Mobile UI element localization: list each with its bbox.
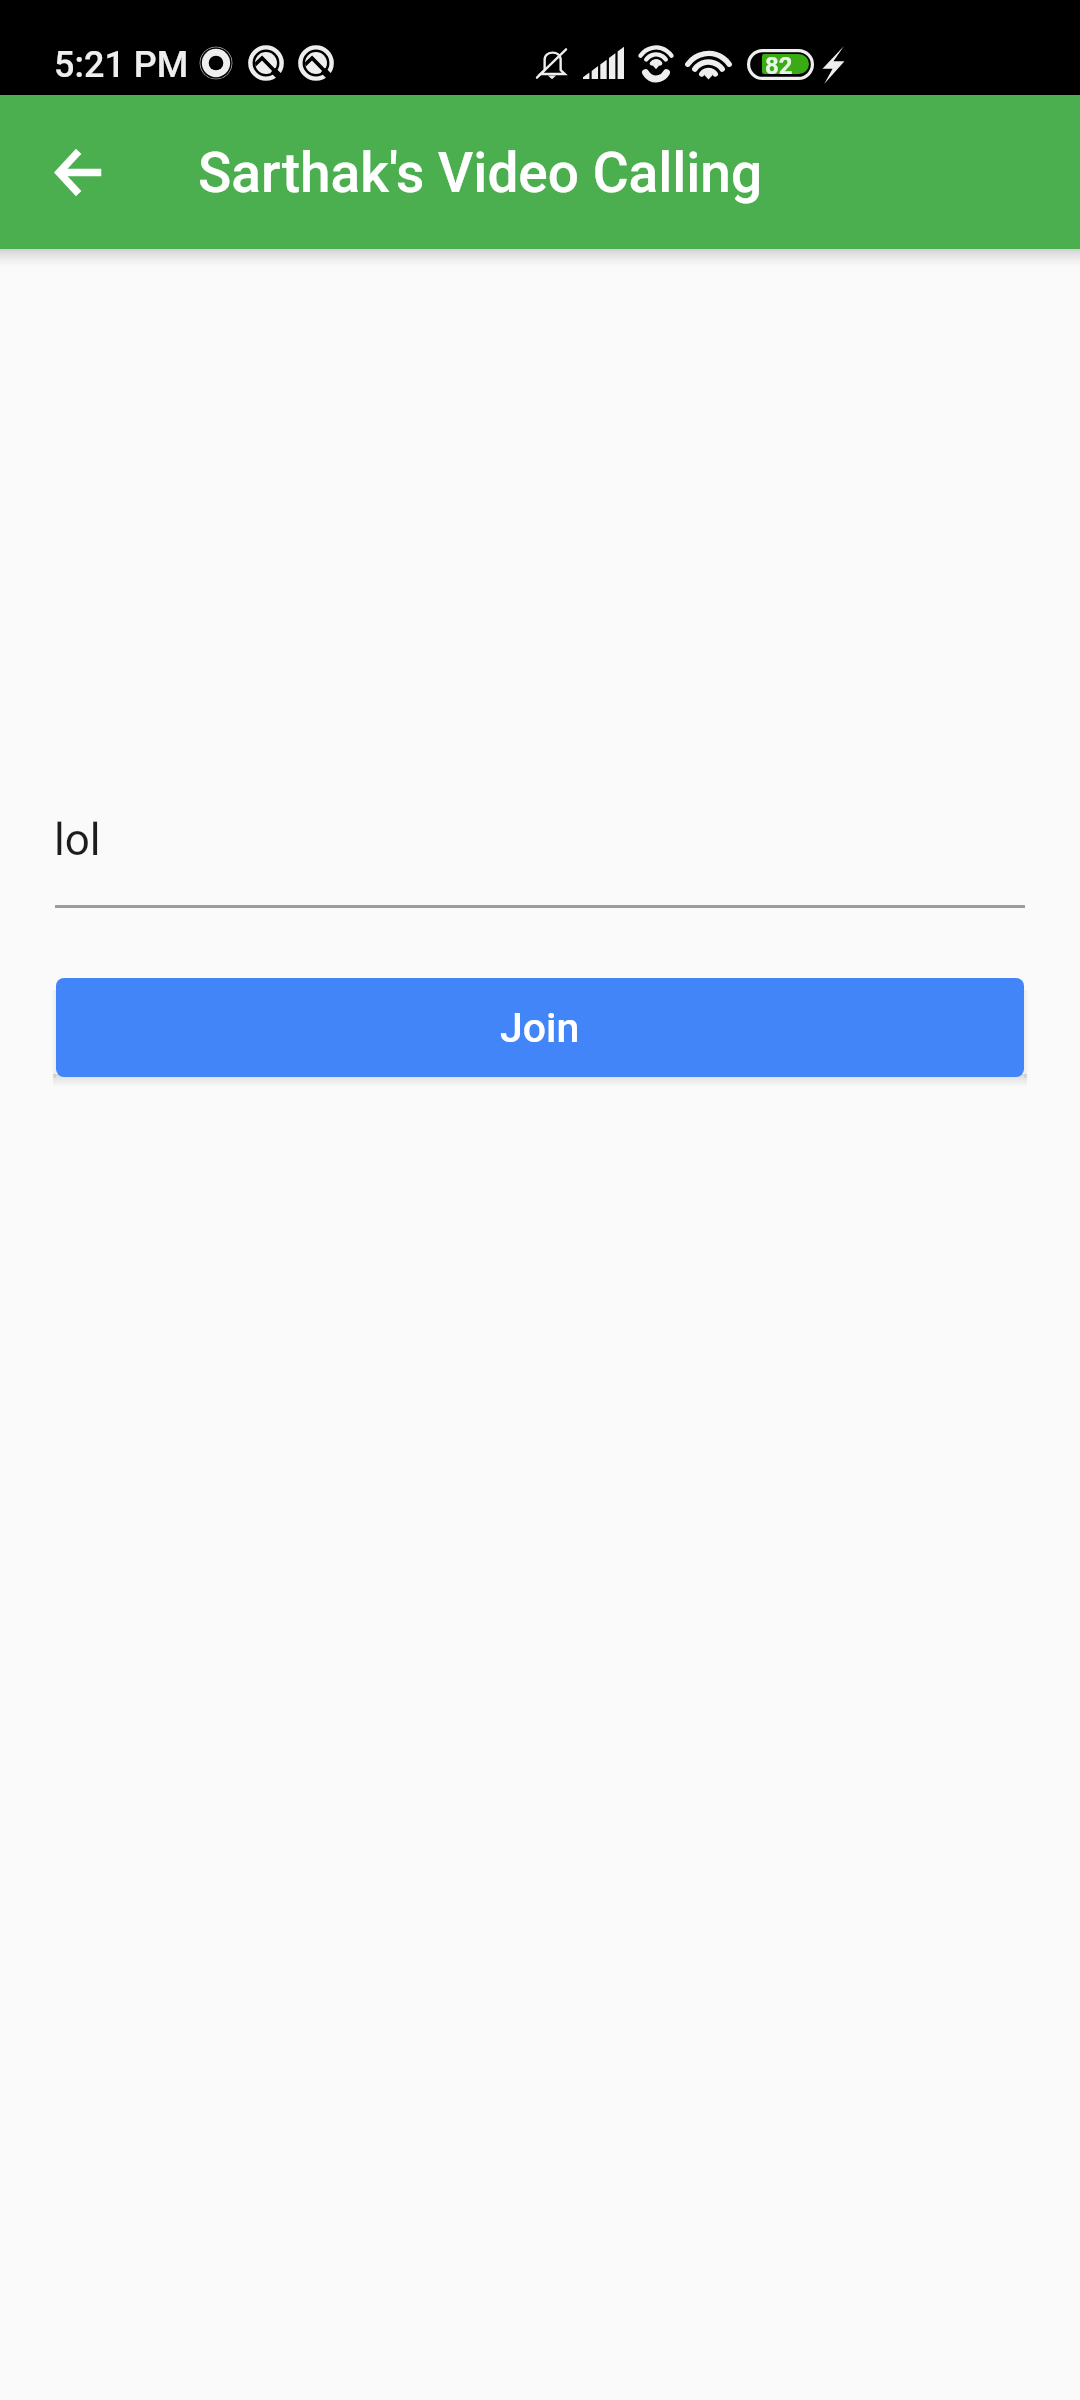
button[interactable]: Back xyxy=(32,126,124,218)
button[interactable]: lol xyxy=(55,796,1025,908)
staticText: 5:21 PM xyxy=(54,44,189,86)
staticText: 82 xyxy=(765,52,793,80)
button[interactable]: Join xyxy=(56,978,1024,1077)
staticText: lol xyxy=(54,814,101,866)
staticText: Join xyxy=(500,1004,580,1052)
staticText: Sarthak's Video Calling xyxy=(198,141,763,205)
